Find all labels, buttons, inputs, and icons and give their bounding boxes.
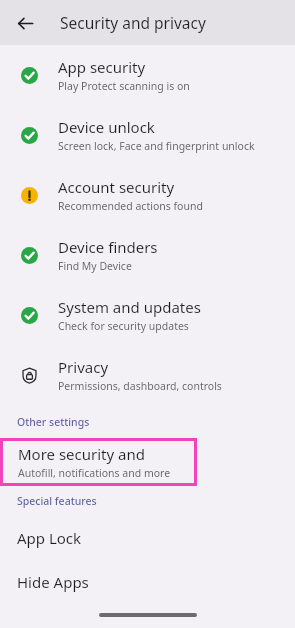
staticText: Check for security updates bbox=[58, 319, 189, 333]
staticText: Permissions, dashboard, controls bbox=[58, 379, 222, 393]
staticText: App Lock bbox=[17, 528, 82, 548]
staticText: Recommended actions found bbox=[58, 199, 203, 213]
button[interactable]: App Lock bbox=[0, 516, 295, 560]
staticText: Play Protect scanning is on bbox=[58, 79, 190, 93]
button[interactable]: Hide Apps bbox=[0, 560, 295, 604]
button[interactable]: Device finders bbox=[0, 225, 295, 285]
staticText: Device finders bbox=[58, 237, 158, 257]
button[interactable]: App security bbox=[0, 45, 295, 105]
button[interactable]: More security and privacy bbox=[3, 441, 194, 483]
staticText: App security bbox=[58, 57, 146, 77]
staticText: Find My Device bbox=[58, 259, 132, 273]
staticText: Security and privacy bbox=[60, 12, 206, 33]
staticText: Screen lock, Face and fingerprint unlock bbox=[58, 139, 255, 153]
staticText: Hide Apps bbox=[17, 572, 89, 592]
staticText: Autofill, notifications and more bbox=[18, 466, 171, 480]
button[interactable]: System and updates bbox=[0, 285, 295, 345]
button[interactable]: Device unlock bbox=[0, 105, 295, 165]
button[interactable]: Privacy bbox=[0, 345, 295, 405]
staticText: Device unlock bbox=[58, 117, 155, 137]
button[interactable]: Back bbox=[7, 5, 43, 41]
staticText: Account security bbox=[58, 177, 175, 197]
staticText: More security and privacy bbox=[18, 444, 194, 464]
staticText: System and updates bbox=[58, 297, 201, 317]
staticText: Special features bbox=[17, 494, 97, 508]
staticText: Other settings bbox=[17, 415, 90, 429]
button[interactable]: Account security bbox=[0, 165, 295, 225]
staticText: Privacy bbox=[58, 357, 109, 377]
